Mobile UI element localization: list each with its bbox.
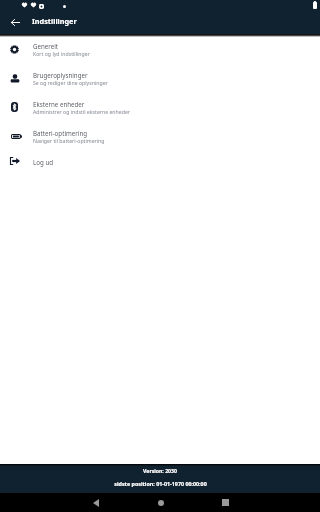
staticText: Brugeroplysninger bbox=[33, 71, 88, 79]
button[interactable]: Brugeroplysninger bbox=[0, 63, 320, 92]
button[interactable]: Home bbox=[151, 493, 170, 512]
staticText: Eksterne enheder bbox=[33, 100, 85, 108]
staticText: Indstillinger bbox=[32, 16, 77, 26]
button[interactable]: Generelt bbox=[0, 34, 320, 63]
staticText: Batteri-optimering bbox=[33, 129, 88, 137]
staticText: Kort og lyd indstillinger bbox=[33, 50, 90, 57]
staticText: Naviger til batteri-optimering bbox=[33, 137, 105, 144]
staticText: Generelt bbox=[33, 42, 59, 50]
staticText: Administrer og indstil eksterne enheder bbox=[33, 108, 130, 115]
button[interactable]: Eksterne enheder bbox=[0, 92, 320, 121]
staticText: Version: 2030 bbox=[143, 467, 177, 474]
staticText: Log ud bbox=[33, 158, 54, 166]
button[interactable]: Recents bbox=[216, 493, 235, 512]
button[interactable]: Back bbox=[86, 493, 105, 512]
staticText: Se og rediger dine oplysninger bbox=[33, 79, 108, 86]
button[interactable]: Back bbox=[4, 14, 26, 31]
button[interactable]: Batteri-optimering bbox=[0, 121, 320, 150]
button[interactable]: Log ud bbox=[0, 150, 320, 179]
staticText: sidste position: 01-01-1970 00:00:00 bbox=[114, 480, 207, 487]
